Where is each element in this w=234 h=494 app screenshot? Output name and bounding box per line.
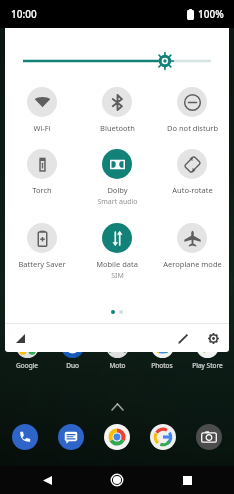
button[interactable]: Mobile data <box>80 222 154 282</box>
staticText: Mobile data <box>96 259 138 269</box>
button[interactable] <box>150 424 176 450</box>
staticText: Aeroplane mode <box>163 259 222 269</box>
staticText: 100% <box>198 7 224 21</box>
staticText: Smart audio <box>97 197 138 207</box>
button[interactable]: Bluetooth <box>80 86 154 134</box>
button[interactable] <box>196 424 222 450</box>
button[interactable]: Back <box>36 469 58 491</box>
staticText: Bluetooth <box>100 123 135 133</box>
staticText: Auto-rotate <box>172 185 213 195</box>
staticText: SIM <box>111 271 124 281</box>
staticText: Google <box>16 361 38 370</box>
button[interactable]: Recents <box>176 469 198 491</box>
staticText: Dolby <box>107 185 128 195</box>
button[interactable] <box>58 424 84 450</box>
button[interactable]: Duo <box>51 335 93 370</box>
button[interactable]: Torch <box>5 148 79 196</box>
button[interactable]: Edit tiles <box>173 328 193 348</box>
button[interactable] <box>104 424 130 450</box>
button[interactable]: Moto <box>96 335 138 370</box>
staticText: Do not disturb <box>167 123 218 133</box>
button[interactable]: Wi-Fi <box>5 86 79 134</box>
staticText: Wi-Fi <box>33 123 51 133</box>
button[interactable]: Play Store <box>186 335 228 370</box>
staticText: Duo <box>66 361 79 370</box>
button[interactable]: Data usage <box>11 329 29 347</box>
staticText: 10:00 <box>11 7 37 21</box>
button[interactable]: Dolby <box>80 148 154 208</box>
staticText: Moto <box>109 361 126 370</box>
staticText: Photos <box>151 361 173 370</box>
staticText: Play Store <box>192 361 223 370</box>
button[interactable]: Settings <box>203 328 223 348</box>
button[interactable] <box>12 424 38 450</box>
button[interactable]: Home <box>106 469 128 491</box>
button[interactable]: Google <box>6 335 48 370</box>
button[interactable]: Do not disturb <box>155 86 229 134</box>
button[interactable]: Aeroplane mode <box>155 222 229 270</box>
button[interactable]: Brightness <box>23 50 211 72</box>
button[interactable]: Photos <box>141 335 183 370</box>
staticText: Torch <box>32 185 52 195</box>
button[interactable]: Auto-rotate <box>155 148 229 196</box>
button[interactable]: Battery Saver <box>5 222 79 270</box>
staticText: Battery Saver <box>18 259 66 269</box>
